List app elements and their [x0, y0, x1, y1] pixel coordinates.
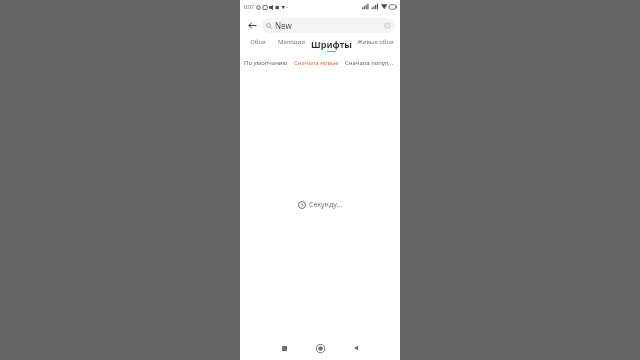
button[interactable]: Живые обои	[353, 36, 397, 55]
staticText: Мелодии	[278, 38, 305, 46]
button[interactable]: Home	[310, 338, 330, 358]
staticText: Сначала новые	[294, 59, 339, 67]
button[interactable]: Обои	[243, 36, 273, 55]
staticText: По умолчанию	[244, 59, 288, 67]
button[interactable]: По умолчанию	[243, 57, 289, 69]
staticText: New	[275, 20, 292, 31]
button[interactable]: Recent apps	[274, 338, 294, 358]
staticText: Сначала попул...	[345, 59, 394, 67]
staticText: Шрифты	[311, 38, 352, 50]
button[interactable]: Back	[346, 338, 366, 358]
button[interactable]: Сначала новые	[293, 57, 340, 69]
staticText: 0:07	[244, 4, 254, 11]
staticText: Секунду...	[309, 200, 343, 210]
staticText: Живые обои	[357, 38, 394, 46]
staticText: Обои	[250, 38, 266, 46]
button[interactable]: Clear search	[384, 22, 391, 29]
button[interactable]: Шрифты	[310, 36, 353, 55]
button[interactable]: Сначала попул...	[344, 57, 395, 69]
button[interactable]: Мелодии	[273, 36, 310, 55]
button[interactable]: New	[262, 18, 395, 33]
button[interactable]: Back	[245, 18, 259, 32]
